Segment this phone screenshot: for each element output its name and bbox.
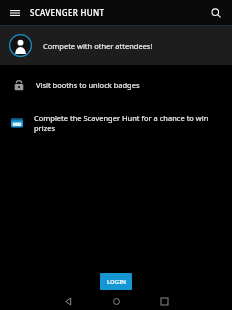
button[interactable]: Complete the Scavenger Hunt for a chance…	[0, 105, 232, 141]
button[interactable]: LOGIN	[100, 273, 132, 290]
staticText: Compete with other attendees!	[43, 41, 153, 51]
staticText: Visit booths to unlock badges	[36, 80, 140, 90]
staticText: Complete the Scavenger Hunt for a chance…	[34, 113, 221, 133]
button[interactable]: Compete with other attendees!	[0, 26, 232, 65]
button[interactable]: Search	[205, 2, 227, 24]
button[interactable]: Recent apps	[156, 293, 172, 309]
button[interactable]: Visit booths to unlock badges	[0, 65, 232, 105]
button[interactable]: Open navigation menu	[4, 2, 26, 24]
staticText: SCAVENGER HUNT	[30, 7, 105, 18]
button[interactable]: Home	[108, 293, 124, 309]
button[interactable]: Back	[60, 293, 76, 309]
staticText: LOGIN	[107, 278, 126, 286]
